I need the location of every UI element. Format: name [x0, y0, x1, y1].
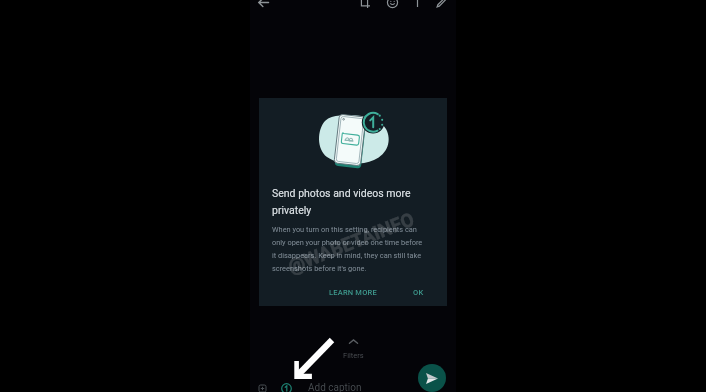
staticText: LEARN MORE	[329, 288, 377, 297]
button[interactable]: Back	[252, 0, 274, 10]
button[interactable]: Crop	[353, 0, 375, 10]
staticText: @WABETAINFO	[285, 208, 418, 278]
button[interactable]: Add media	[255, 381, 269, 392]
staticText: Add caption	[308, 382, 362, 392]
staticText: Filters	[343, 351, 364, 360]
staticText: When you turn on this setting, recipient…	[272, 225, 427, 273]
button[interactable]: Add text	[406, 0, 428, 10]
button[interactable]: LEARN MORE	[322, 284, 384, 301]
button[interactable]: Filters	[338, 339, 369, 360]
button[interactable]: View once	[279, 381, 293, 392]
button[interactable]: Send	[418, 364, 446, 392]
button[interactable]: Draw	[430, 0, 452, 10]
staticText: Send photos and videos more privately	[272, 187, 422, 216]
button[interactable]: Stickers	[381, 0, 403, 10]
staticText: OK	[413, 288, 424, 297]
button[interactable]: OK	[406, 284, 431, 301]
